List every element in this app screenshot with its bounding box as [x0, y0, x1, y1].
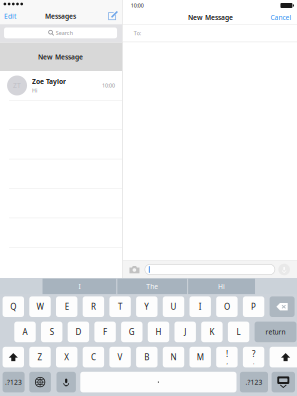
button[interactable]: O — [216, 296, 238, 317]
staticText: T — [118, 301, 122, 312]
button[interactable]: V — [109, 347, 131, 367]
staticText: Q — [10, 301, 16, 312]
staticText: Cancel — [270, 13, 291, 22]
button[interactable]: E — [56, 296, 77, 317]
button[interactable]: .?123 — [240, 372, 268, 392]
button[interactable]: L — [228, 322, 249, 342]
staticText: . — [253, 359, 254, 366]
button[interactable]: J — [174, 322, 196, 342]
button[interactable]: B — [136, 347, 157, 367]
button[interactable]: T — [109, 296, 131, 317]
staticText: D — [75, 327, 81, 337]
button[interactable]: Edit — [0, 9, 16, 23]
button[interactable]: Dictate — [278, 264, 290, 275]
button[interactable]: return — [255, 322, 296, 342]
button[interactable]: C — [83, 347, 104, 367]
button[interactable]: Q — [3, 296, 24, 317]
button[interactable]: .?123 — [3, 372, 25, 392]
button[interactable]: D — [68, 322, 89, 342]
staticText: New Message — [38, 52, 83, 61]
button[interactable] — [3, 347, 24, 367]
staticText: The — [146, 282, 158, 291]
staticText: G — [129, 327, 135, 337]
button[interactable]: A — [14, 322, 36, 342]
staticText: R — [91, 301, 96, 312]
button[interactable]: S — [41, 322, 62, 342]
button[interactable] — [272, 372, 295, 392]
button[interactable]: K — [201, 322, 223, 342]
button[interactable]: Y — [136, 296, 157, 317]
staticText: N — [170, 352, 176, 362]
button[interactable]: U — [163, 296, 184, 317]
button[interactable]: ! — [216, 347, 238, 367]
staticText: .?123 — [245, 378, 262, 387]
staticText: Search — [56, 29, 73, 36]
staticText: C — [91, 352, 96, 362]
button[interactable]: Z — [29, 347, 51, 367]
staticText: Edit — [4, 12, 16, 21]
button[interactable]: ? — [243, 347, 264, 367]
staticText: Hi — [218, 282, 225, 291]
button[interactable]: G — [121, 322, 142, 342]
button[interactable]: To: — [123, 25, 297, 42]
button[interactable]: N — [163, 347, 184, 367]
button[interactable]: Camera — [129, 261, 140, 278]
staticText: X — [64, 352, 69, 362]
button[interactable]: ZT — [0, 71, 122, 100]
button[interactable]: I — [42, 279, 116, 294]
staticText: return — [265, 327, 285, 336]
staticText: Y — [144, 301, 149, 312]
button[interactable]: M — [189, 347, 211, 367]
staticText: To: — [134, 30, 141, 37]
button[interactable]: X — [56, 347, 77, 367]
staticText: 10:00 — [131, 2, 144, 9]
staticText: J — [184, 327, 186, 337]
staticText: P — [251, 301, 256, 312]
staticText: Zoe Taylor — [32, 77, 66, 86]
staticText: A — [22, 327, 27, 337]
staticText: E — [65, 301, 69, 312]
button[interactable]: W — [29, 296, 51, 317]
button[interactable]: H — [148, 322, 169, 342]
button[interactable]: I — [189, 296, 211, 317]
button[interactable] — [270, 296, 295, 317]
button[interactable] — [56, 372, 76, 392]
staticText: .?123 — [5, 378, 22, 387]
staticText: V — [118, 352, 123, 362]
staticText: U — [170, 301, 176, 312]
staticText: H — [155, 327, 161, 337]
staticText: ? — [252, 348, 255, 359]
staticText: S — [50, 327, 54, 337]
button[interactable]: Compose — [108, 8, 122, 24]
staticText: Hi — [32, 87, 37, 94]
staticText: Messages — [45, 12, 76, 21]
button[interactable]: F — [94, 322, 116, 342]
button[interactable]: New Message — [0, 43, 122, 71]
button[interactable]: Hi — [188, 279, 255, 294]
staticText: , — [226, 359, 227, 366]
button[interactable]: The — [117, 279, 187, 294]
staticText: New Message — [188, 13, 233, 22]
staticText: M — [197, 352, 204, 362]
staticText: I — [199, 301, 202, 312]
staticText: ! — [226, 348, 228, 359]
staticText: B — [144, 352, 149, 362]
button[interactable] — [270, 347, 297, 367]
staticText: W — [36, 301, 43, 312]
staticText: F — [103, 327, 107, 337]
button[interactable]: R — [83, 296, 104, 317]
staticText: L — [237, 327, 241, 337]
button[interactable]: Cancel — [270, 11, 297, 24]
button[interactable]: P — [243, 296, 264, 317]
staticText: ZT — [13, 81, 21, 90]
staticText: O — [224, 301, 230, 312]
staticText: I — [78, 282, 80, 291]
button[interactable] — [80, 372, 236, 392]
staticText: 10:00 — [102, 82, 115, 89]
staticText: Z — [37, 352, 42, 362]
button[interactable] — [29, 372, 51, 392]
staticText: K — [209, 327, 214, 337]
